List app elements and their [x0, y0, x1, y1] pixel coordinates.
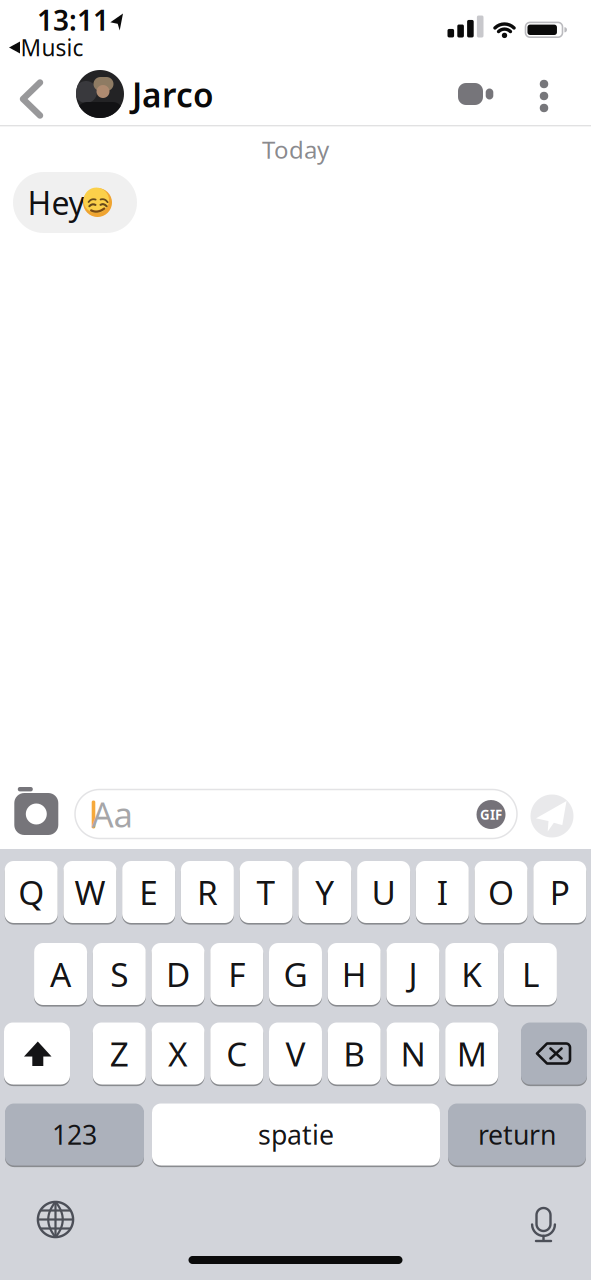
button[interactable]: R: [181, 861, 234, 923]
button[interactable]: S: [93, 943, 146, 1005]
button[interactable]: C: [210, 1022, 263, 1084]
staticText: 13:11: [37, 1, 109, 39]
button[interactable]: Jarco profile: [76, 70, 124, 118]
button[interactable]: More options: [522, 74, 566, 118]
staticText: 123: [52, 1117, 97, 1152]
button[interactable]: E: [122, 861, 175, 923]
button[interactable]: W: [63, 861, 116, 923]
staticText: X: [168, 1031, 188, 1076]
staticText: Music: [20, 32, 83, 62]
button[interactable]: H: [328, 943, 381, 1005]
staticText: spatie: [258, 1117, 334, 1152]
staticText: D: [166, 952, 190, 996]
staticText: V: [285, 1031, 305, 1076]
staticText: Z: [110, 1031, 129, 1076]
button[interactable]: K: [445, 943, 498, 1005]
staticText: Today: [262, 134, 329, 165]
button[interactable]: Video call: [454, 72, 498, 116]
button[interactable]: spatie: [152, 1103, 440, 1165]
button[interactable]: Message: [75, 789, 517, 838]
button[interactable]: P: [533, 861, 586, 923]
button[interactable]: U: [357, 861, 410, 923]
staticText: Jarco: [132, 72, 214, 117]
staticText: M: [457, 1031, 487, 1076]
button[interactable]: Delete: [521, 1022, 587, 1084]
button[interactable]: G: [269, 943, 322, 1005]
staticText: E: [139, 870, 158, 914]
button[interactable]: D: [151, 943, 204, 1005]
staticText: C: [226, 1031, 247, 1076]
staticText: N: [400, 1031, 425, 1076]
staticText: J: [408, 952, 417, 996]
button[interactable]: return: [448, 1103, 586, 1165]
button[interactable]: N: [386, 1022, 439, 1084]
button[interactable]: L: [504, 943, 557, 1005]
button[interactable]: A: [34, 943, 87, 1005]
staticText: Q: [18, 870, 44, 914]
button[interactable]: GIF picker: [476, 800, 505, 829]
button[interactable]: Camera: [10, 787, 62, 841]
button[interactable]: Next keyboard: [33, 1197, 77, 1241]
button[interactable]: Y: [298, 861, 351, 923]
staticText: A: [50, 952, 71, 996]
button[interactable]: O: [474, 861, 527, 923]
staticText: return: [478, 1117, 556, 1152]
staticText: Aa: [91, 791, 132, 837]
button[interactable]: Send: [530, 794, 573, 837]
staticText: H: [342, 952, 367, 996]
button[interactable]: Shift: [4, 1022, 70, 1084]
button[interactable]: B: [328, 1022, 381, 1084]
staticText: T: [257, 870, 276, 914]
staticText: Hey: [27, 181, 84, 224]
staticText: B: [343, 1031, 365, 1076]
staticText: F: [228, 952, 245, 996]
staticText: L: [522, 952, 539, 996]
button[interactable]: X: [151, 1022, 204, 1084]
staticText: S: [110, 952, 128, 996]
staticText: I: [437, 870, 448, 914]
button[interactable]: M: [445, 1022, 498, 1084]
staticText: GIF: [480, 806, 502, 823]
button[interactable]: J: [386, 943, 439, 1005]
staticText: W: [74, 870, 105, 914]
staticText: U: [372, 870, 396, 914]
button[interactable]: Dictate: [521, 1200, 565, 1244]
button[interactable]: Q: [5, 861, 58, 923]
staticText: O: [488, 870, 514, 914]
staticText: Y: [315, 870, 334, 914]
staticText: G: [283, 952, 307, 996]
button[interactable]: Z: [93, 1022, 146, 1084]
button[interactable]: F: [210, 943, 263, 1005]
button[interactable]: I: [416, 861, 469, 923]
staticText: R: [197, 870, 218, 914]
staticText: K: [461, 952, 482, 996]
button[interactable]: Back: [10, 77, 54, 121]
button[interactable]: V: [269, 1022, 322, 1084]
staticText: P: [550, 870, 570, 914]
button[interactable]: T: [240, 861, 293, 923]
button[interactable]: 123: [5, 1103, 144, 1165]
